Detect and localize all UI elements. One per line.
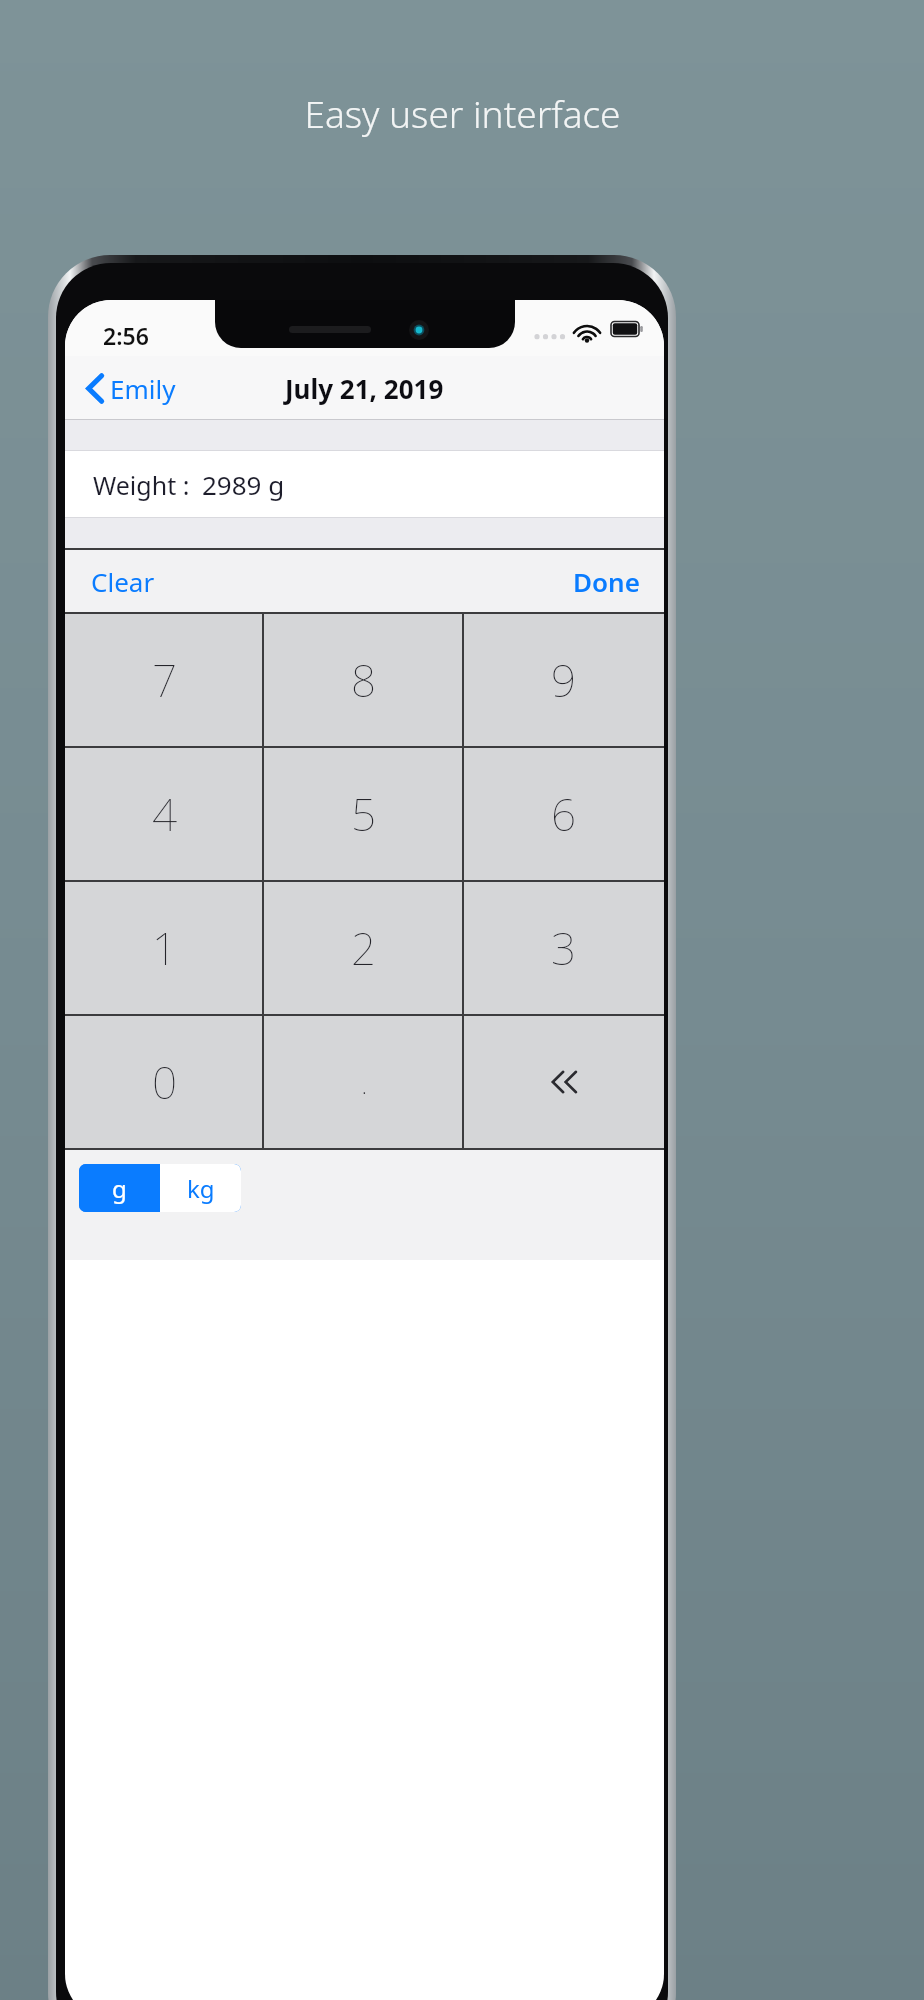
staticText: Easy user interface	[304, 88, 621, 138]
staticText: 9	[551, 650, 577, 710]
staticText: July 21, 2019	[285, 371, 444, 406]
button[interactable]: kg	[160, 1164, 241, 1212]
button[interactable]: 7	[65, 614, 264, 746]
staticText: Clear	[91, 564, 155, 599]
button[interactable]: Done	[553, 550, 664, 612]
button[interactable]: 4	[65, 748, 264, 880]
button[interactable]: Emily	[81, 365, 182, 412]
staticText: .	[361, 1062, 368, 1103]
staticText: 7	[152, 650, 178, 710]
button[interactable]: .	[264, 1016, 464, 1148]
button[interactable]: 2	[264, 882, 464, 1014]
staticText: 3	[551, 918, 577, 978]
staticText: 2:56	[103, 320, 149, 351]
button[interactable]: 0	[65, 1016, 264, 1148]
button[interactable]: 6	[464, 748, 664, 880]
button[interactable]: 1	[65, 882, 264, 1014]
button[interactable]: Backspace	[464, 1016, 664, 1148]
staticText: 0	[152, 1052, 178, 1112]
staticText: g	[112, 1172, 127, 1205]
button[interactable]: 9	[464, 614, 664, 746]
button[interactable]: 3	[464, 882, 664, 1014]
button[interactable]: Weight :	[65, 451, 664, 517]
staticText: kg	[187, 1172, 215, 1205]
staticText: 5	[351, 784, 377, 844]
button[interactable]: 5	[264, 748, 464, 880]
button[interactable]: 8	[264, 614, 464, 746]
staticText: Emily	[110, 371, 176, 406]
staticText: 2989 g	[202, 467, 285, 502]
button[interactable]: Clear	[65, 550, 175, 612]
staticText: Weight :	[93, 468, 190, 502]
staticText: 2	[351, 918, 377, 978]
staticText: 1	[152, 918, 178, 978]
staticText: 4	[152, 784, 178, 844]
staticText: Done	[573, 564, 640, 599]
button[interactable]: g	[79, 1164, 160, 1212]
staticText: 8	[351, 650, 377, 710]
staticText: 6	[551, 784, 577, 844]
